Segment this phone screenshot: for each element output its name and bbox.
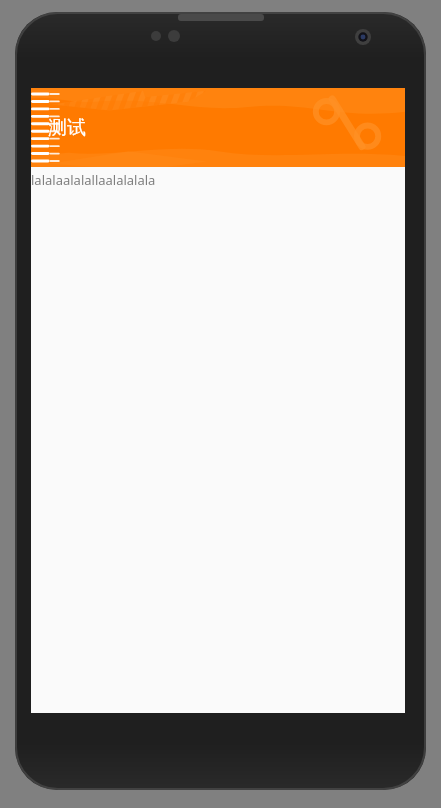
staticText: lalalaalalallaalalalala: [31, 171, 405, 189]
staticText: 测试: [48, 116, 86, 140]
button[interactable]: Promotion banner: [31, 88, 405, 167]
